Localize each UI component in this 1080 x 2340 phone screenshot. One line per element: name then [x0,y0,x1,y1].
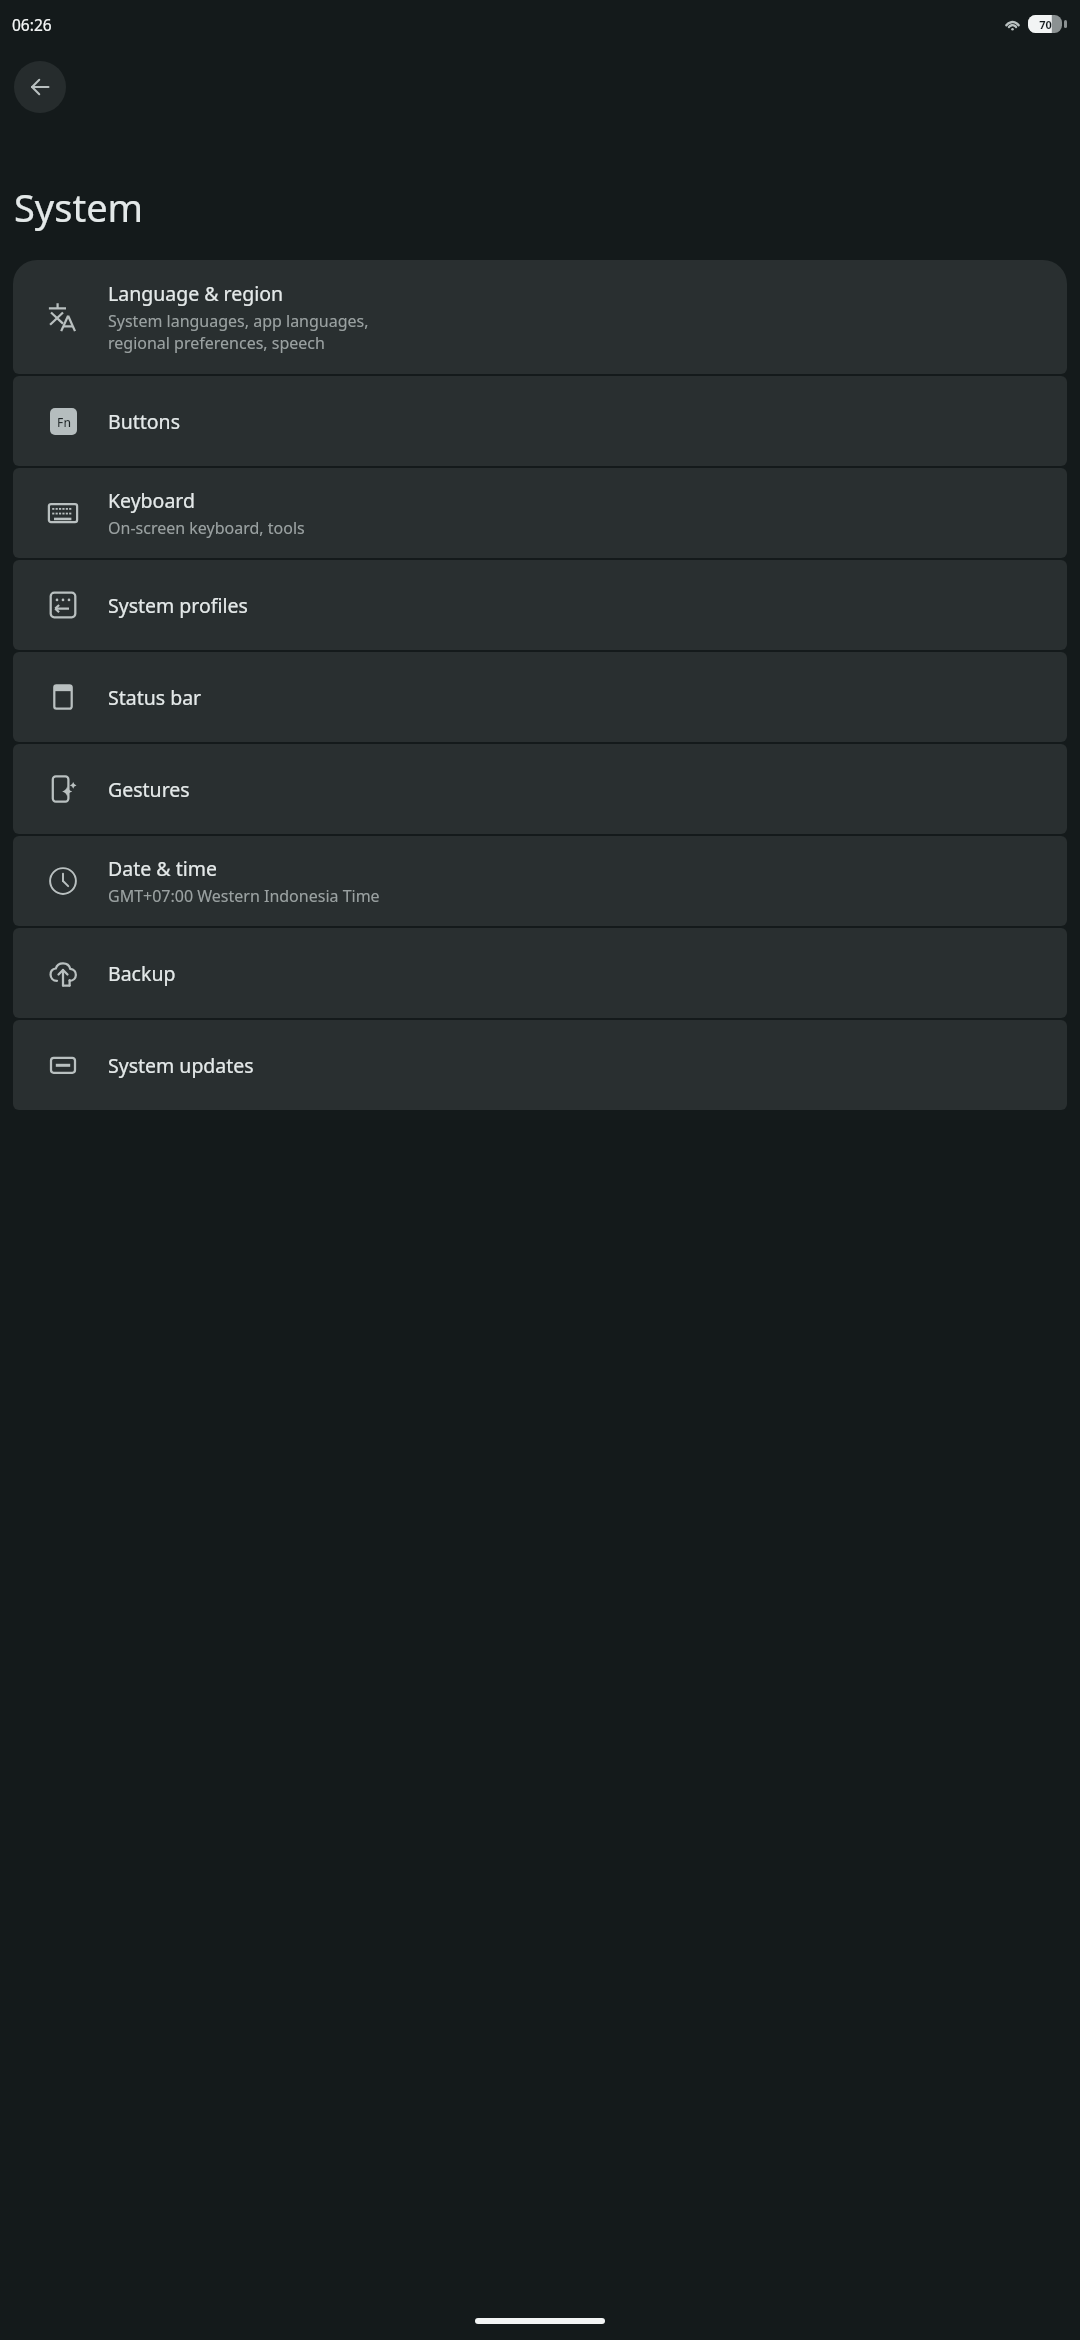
staticText: Language & region [108,280,284,307]
staticText: Buttons [108,408,180,435]
button[interactable]: Gestures [13,744,1067,834]
staticText: Gestures [108,776,190,803]
staticText: System languages, app languages, regiona… [108,310,369,354]
staticText: Backup [108,960,176,987]
staticText: Status bar [108,684,202,711]
staticText: Fn [57,414,71,430]
staticText: 70 [1039,17,1052,32]
button[interactable]: System profiles [13,560,1067,650]
staticText: GMT+07:00 Western Indonesia Time [108,885,380,907]
staticText: System [14,181,144,233]
staticText: System profiles [108,592,248,619]
button[interactable]: Language & region [13,260,1067,374]
button[interactable]: Keyboard [13,468,1067,558]
button[interactable]: Fn [13,376,1067,466]
button[interactable]: Back [14,61,66,113]
staticText: Date & time [108,855,217,882]
button[interactable]: Backup [13,928,1067,1018]
button[interactable]: Status bar [13,652,1067,742]
staticText: System updates [108,1052,254,1079]
staticText: Keyboard [108,487,196,514]
staticText: On-screen keyboard, tools [108,517,305,539]
button[interactable]: System updates [13,1020,1067,1110]
staticText: 06:26 [12,14,52,35]
button[interactable]: Date & time [13,836,1067,926]
